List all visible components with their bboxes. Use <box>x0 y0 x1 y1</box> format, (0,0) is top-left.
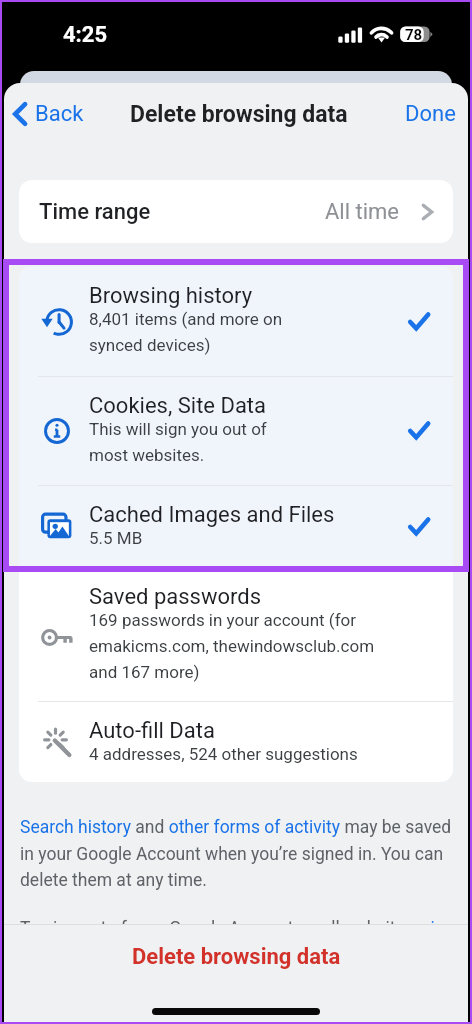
staticText: Search history and other forms of activi… <box>20 817 452 890</box>
button[interactable]: Auto-fill Data <box>19 702 453 782</box>
staticText: 4:25 <box>63 22 108 48</box>
button[interactable]: Saved passwords <box>19 568 453 701</box>
button[interactable]: Back <box>8 97 98 133</box>
button[interactable]: Browsing history <box>19 267 453 376</box>
other: Selected <box>409 517 429 537</box>
staticText: Saved passwords <box>89 584 262 610</box>
button[interactable]: Time range <box>19 180 453 243</box>
staticText: This will sign you out of most websites. <box>89 419 267 465</box>
staticText: 78 <box>405 26 423 44</box>
staticText: Delete browsing data <box>132 944 341 970</box>
staticText: 169 passwords in your account (for emaki… <box>89 610 375 682</box>
staticText: Cookies, Site Data <box>89 393 267 419</box>
staticText: Back <box>35 101 84 127</box>
staticText: All time <box>325 199 400 225</box>
button[interactable]: Cached Images and Files <box>19 486 453 567</box>
staticText: Browsing history <box>89 283 253 309</box>
other: Selected <box>409 421 429 441</box>
staticText: Done <box>405 101 456 127</box>
staticText: 4 addresses, 524 other suggestions <box>89 744 358 764</box>
button[interactable]: Delete browsing data <box>4 925 468 1024</box>
button[interactable]: Cookies, Site Data <box>19 377 453 485</box>
staticText: To sign out of your Google Account on al… <box>20 918 455 939</box>
staticText: Delete browsing data <box>130 101 348 128</box>
button[interactable]: Done <box>389 97 468 133</box>
staticText: Auto-fill Data <box>89 718 215 744</box>
staticText: 8,401 items (and more on synced devices) <box>89 309 283 355</box>
staticText: 5.5 MB <box>89 528 143 548</box>
other: Selected <box>409 312 429 332</box>
staticText: Cached Images and Files <box>89 502 335 528</box>
staticText: Time range <box>39 199 151 225</box>
